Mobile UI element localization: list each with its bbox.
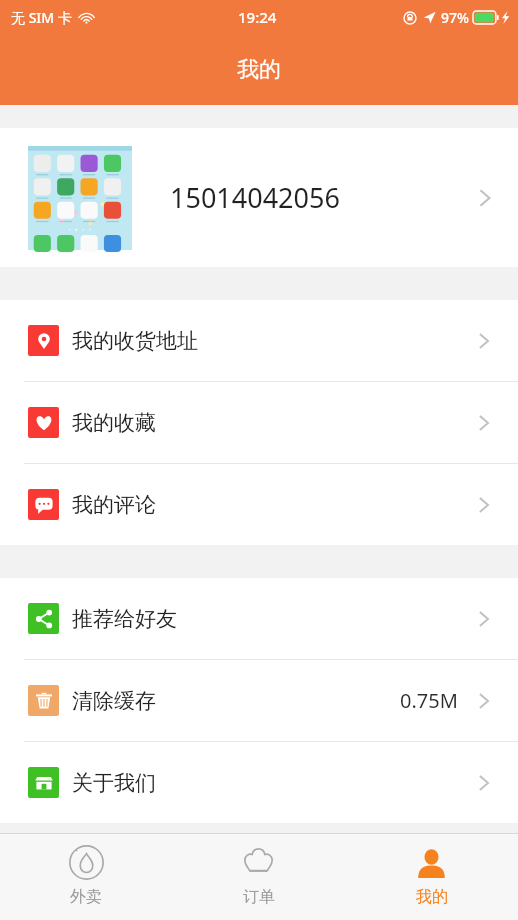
staticText: 推荐给好友 xyxy=(72,606,177,632)
button[interactable]: 我的收藏 xyxy=(0,382,518,463)
button[interactable]: 我的 xyxy=(345,834,518,920)
staticText: 我的收藏 xyxy=(72,410,156,436)
staticText: 我的评论 xyxy=(72,492,156,518)
staticText: 19:24 xyxy=(238,7,277,27)
button[interactable]: 关于我们 xyxy=(0,742,518,823)
staticText: 无 SIM 卡 xyxy=(11,8,72,27)
staticText: 外卖 xyxy=(70,887,102,907)
staticText: 订单 xyxy=(243,887,275,907)
button[interactable]: 我的收货地址 xyxy=(0,300,518,381)
button[interactable]: 清除缓存 xyxy=(0,660,518,741)
button[interactable]: 推荐给好友 xyxy=(0,578,518,659)
button[interactable]: 订单 xyxy=(172,834,345,920)
button[interactable]: 15014042056 xyxy=(0,128,518,267)
staticText: 我的 xyxy=(237,56,281,84)
staticText: 15014042056 xyxy=(170,179,340,216)
button[interactable]: 外卖 xyxy=(0,834,172,920)
staticText: 清除缓存 xyxy=(72,688,156,714)
staticText: 我的收货地址 xyxy=(72,328,198,354)
staticText: 97% xyxy=(441,8,469,27)
button[interactable]: 我的评论 xyxy=(0,464,518,545)
staticText: 我的 xyxy=(416,887,448,907)
staticText: 关于我们 xyxy=(72,770,156,796)
staticText: 0.75M xyxy=(400,687,458,714)
